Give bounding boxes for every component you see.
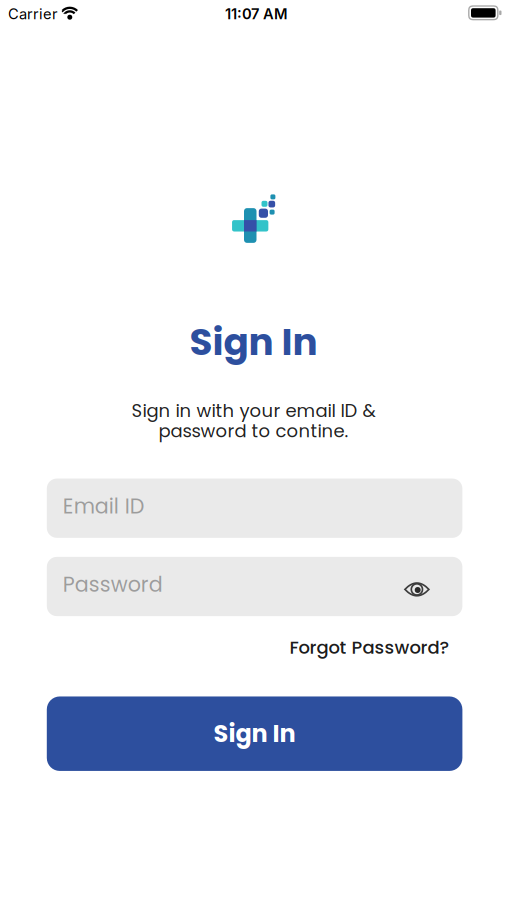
button[interactable]: Show password <box>402 578 432 600</box>
staticText: Sign In <box>189 316 317 368</box>
staticText: Sign In <box>214 717 296 750</box>
staticText: Carrier <box>8 5 58 23</box>
staticText: Forgot Password? <box>289 635 449 660</box>
staticText: password to contine. <box>158 418 348 443</box>
staticText: Sign in with your email ID & <box>131 398 375 423</box>
button[interactable]: Forgot Password? <box>289 635 449 660</box>
staticText: Email ID <box>63 492 145 521</box>
staticText: 11:07 AM <box>225 5 288 23</box>
button[interactable]: Password <box>47 557 462 616</box>
button[interactable]: Email ID <box>47 479 462 538</box>
staticText: Password <box>63 570 163 599</box>
button[interactable]: Sign In <box>47 696 462 771</box>
